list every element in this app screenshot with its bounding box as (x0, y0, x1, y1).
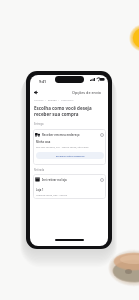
staticText: Avenida Verde, 880 - Centro (36, 193, 68, 196)
staticText: Escolha como você deseja receber sua com… (34, 105, 92, 117)
staticText: › (44, 99, 48, 102)
button[interactable]: Irei retirar na loja (33, 174, 106, 199)
staticText: Carrinho (34, 99, 44, 102)
staticText: Irei retirar na loja (42, 178, 67, 182)
staticText: Escolher outro endereço (56, 154, 85, 157)
staticText: › (57, 99, 61, 102)
button[interactable]: Voltar (32, 89, 39, 96)
staticText: 9:41 (39, 79, 47, 84)
staticText: Receber em meu endereço (42, 133, 80, 137)
staticText: Entrega (48, 99, 57, 102)
staticText: Opções de envio (72, 90, 102, 95)
staticText: Rua dos Tucanos, 251 - Bairro Verde, São… (36, 145, 89, 148)
staticText: Minha casa (36, 140, 51, 144)
staticText: Loja 1 (36, 188, 44, 192)
staticText: Pagamento (61, 99, 74, 102)
button[interactable]: Receber em meu endereço (33, 129, 106, 165)
staticText: Retirada (34, 168, 45, 172)
staticText: Entrega (34, 122, 44, 126)
button[interactable]: Escolher outro endereço (36, 152, 104, 159)
